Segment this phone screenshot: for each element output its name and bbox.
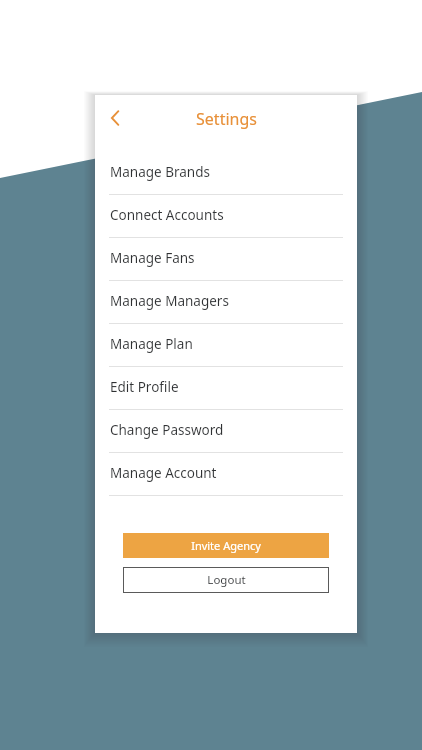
staticText: Connect Accounts [110, 206, 224, 224]
staticText: Manage Managers [110, 292, 229, 310]
button[interactable]: Change Password [95, 410, 357, 453]
button[interactable]: Invite Agency [123, 533, 329, 558]
staticText: Manage Brands [110, 163, 210, 181]
staticText: Manage Account [110, 464, 217, 482]
button[interactable]: Manage Account [95, 453, 357, 496]
staticText: Manage Fans [110, 249, 195, 267]
button[interactable]: Edit Profile [95, 367, 357, 410]
staticText: Manage Plan [110, 335, 193, 353]
button[interactable]: Manage Fans [95, 238, 357, 281]
button[interactable]: Manage Managers [95, 281, 357, 324]
button[interactable]: Connect Accounts [95, 195, 357, 238]
staticText: Edit Profile [110, 378, 179, 396]
staticText: Invite Agency [191, 538, 261, 553]
button[interactable]: Manage Plan [95, 324, 357, 367]
button[interactable]: Manage Brands [95, 152, 357, 195]
staticText: Settings [196, 108, 257, 130]
staticText: Change Password [110, 421, 224, 439]
button[interactable]: Logout [123, 567, 329, 593]
button[interactable]: Back [97, 100, 133, 136]
staticText: Logout [207, 572, 246, 588]
